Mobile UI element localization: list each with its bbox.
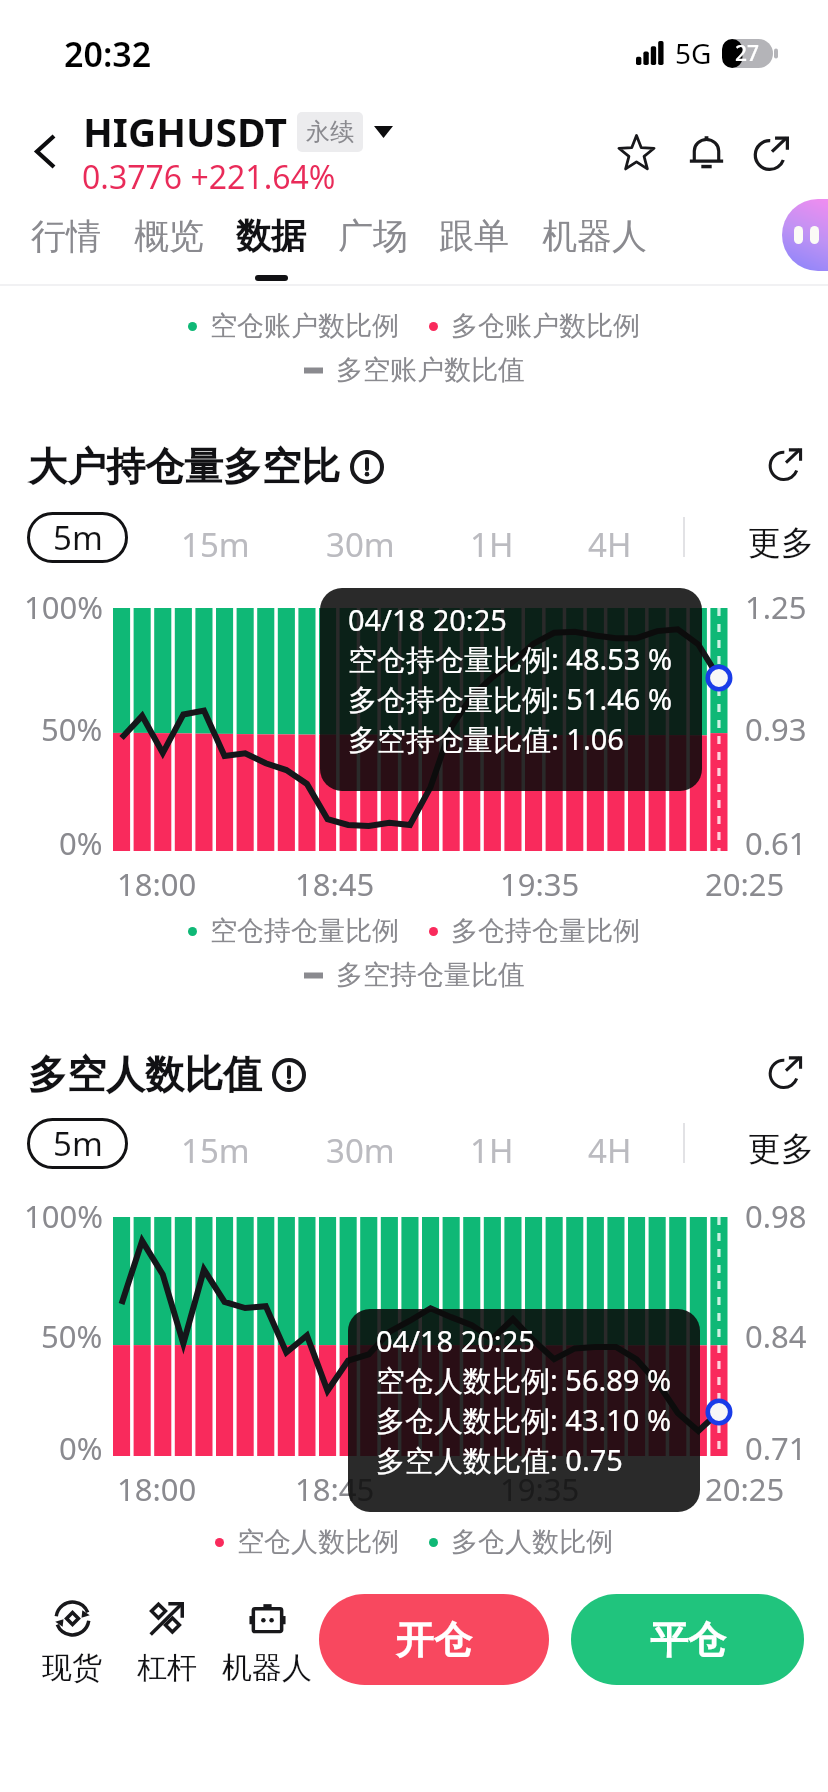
button[interactable]: 30m bbox=[326, 1128, 395, 1173]
staticText: 18:45 bbox=[295, 863, 375, 905]
button[interactable]: 平仓 bbox=[571, 1594, 804, 1685]
button[interactable]: Favorite bbox=[604, 120, 668, 184]
staticText: 0% bbox=[59, 1427, 103, 1469]
button[interactable]: Notifications bbox=[674, 120, 738, 184]
button[interactable]: 更多 bbox=[748, 1128, 814, 1170]
staticText: 1H bbox=[470, 1128, 514, 1173]
staticText: 5G bbox=[675, 34, 712, 72]
staticText: 跟单 bbox=[439, 214, 509, 258]
staticText: 20:25 bbox=[705, 1468, 785, 1510]
staticText: 100% bbox=[24, 586, 103, 628]
staticText: 30m bbox=[326, 522, 395, 567]
button[interactable]: Open full chart bbox=[754, 431, 818, 495]
button[interactable]: 开仓 bbox=[319, 1594, 549, 1685]
button[interactable]: 4H bbox=[588, 522, 632, 567]
staticText: 50% bbox=[41, 1315, 103, 1357]
staticText: 多空人数比值 bbox=[28, 1050, 262, 1099]
staticText: 18:00 bbox=[117, 863, 197, 905]
staticText: 30m bbox=[326, 1128, 395, 1173]
staticText: 平仓 bbox=[650, 1616, 726, 1664]
staticText: 更多 bbox=[748, 522, 814, 564]
staticText: 空仓持仓量比例 bbox=[210, 914, 399, 948]
button[interactable]: 数据 bbox=[227, 214, 315, 284]
staticText: 4H bbox=[588, 1128, 632, 1173]
button[interactable]: Back bbox=[15, 121, 76, 182]
button[interactable]: Open full chart bbox=[754, 1039, 818, 1103]
staticText: 开仓 bbox=[396, 1616, 472, 1664]
staticText: 现货 bbox=[42, 1649, 102, 1684]
button[interactable]: 5m bbox=[27, 512, 128, 563]
button[interactable]: 30m bbox=[326, 522, 395, 567]
staticText: 0.71 bbox=[745, 1427, 807, 1469]
staticText: 机器人 bbox=[222, 1649, 312, 1684]
button[interactable]: 4H bbox=[588, 1128, 632, 1173]
staticText: 数据 bbox=[236, 214, 306, 258]
staticText: 27 bbox=[735, 39, 760, 68]
staticText: 多空账户数比值 bbox=[336, 353, 525, 387]
staticText: 19:35 bbox=[500, 1468, 580, 1510]
button[interactable]: Customer service chat bbox=[782, 199, 828, 271]
button[interactable]: 机器人 bbox=[536, 214, 652, 284]
staticText: 杠杆 bbox=[137, 1649, 197, 1684]
staticText: 19:35 bbox=[500, 863, 580, 905]
staticText: 多仓人数比例 bbox=[451, 1525, 613, 1559]
button[interactable]: 15m bbox=[181, 522, 250, 567]
staticText: 50% bbox=[41, 708, 103, 750]
staticText: 04/18 20:25 bbox=[348, 600, 507, 639]
staticText: 更多 bbox=[748, 1128, 814, 1170]
button[interactable]: 跟单 bbox=[430, 214, 518, 284]
staticText: 多空人数比值: 0.75 bbox=[376, 1440, 623, 1480]
staticText: 0.61 bbox=[745, 822, 807, 864]
staticText: 5m bbox=[53, 1121, 103, 1166]
staticText: 04/18 20:25 bbox=[376, 1321, 535, 1360]
staticText: 0.93 bbox=[745, 708, 807, 750]
staticText: 18:45 bbox=[295, 1468, 375, 1510]
button[interactable]: 概览 bbox=[125, 214, 213, 284]
staticText: 4H bbox=[588, 522, 632, 567]
staticText: 多仓持仓量比例 bbox=[451, 914, 640, 948]
staticText: 0% bbox=[59, 822, 103, 864]
staticText: 100% bbox=[24, 1195, 103, 1237]
staticText: 空仓持仓量比例: 48.53 % bbox=[348, 639, 673, 679]
staticText: 0.98 bbox=[745, 1195, 807, 1237]
staticText: 1.25 bbox=[745, 586, 807, 628]
staticText: 1H bbox=[470, 522, 514, 567]
button[interactable]: 现货 bbox=[17, 1598, 127, 1684]
button[interactable]: 行情 bbox=[22, 214, 110, 284]
staticText: 行情 bbox=[31, 214, 101, 258]
staticText: 多仓账户数比例 bbox=[451, 309, 640, 343]
staticText: 20:25 bbox=[705, 863, 785, 905]
staticText: 20:32 bbox=[64, 31, 152, 77]
staticText: HIGHUSDT bbox=[83, 105, 287, 158]
button[interactable]: 1H bbox=[470, 522, 514, 567]
staticText: 多仓持仓量比例: 51.46 % bbox=[348, 679, 673, 719]
button[interactable]: 广场 bbox=[329, 214, 417, 284]
staticText: 15m bbox=[181, 1128, 250, 1173]
staticText: 空仓账户数比例 bbox=[210, 309, 399, 343]
button[interactable]: 5m bbox=[27, 1118, 128, 1169]
button[interactable]: 杠杆 bbox=[112, 1598, 222, 1684]
staticText: 18:00 bbox=[117, 1468, 197, 1510]
staticText: 0.3776 +221.64% bbox=[82, 155, 336, 199]
staticText: 多空持仓量比值: 1.06 bbox=[348, 719, 624, 759]
staticText: 多仓人数比例: 43.10 % bbox=[376, 1400, 672, 1440]
button[interactable]: Share bbox=[740, 120, 804, 184]
staticText: 广场 bbox=[338, 214, 408, 258]
staticText: 空仓人数比例: 56.89 % bbox=[376, 1360, 672, 1400]
staticText: 15m bbox=[181, 522, 250, 567]
staticText: 概览 bbox=[134, 214, 204, 258]
staticText: 5m bbox=[53, 515, 103, 560]
staticText: 多空持仓量比值 bbox=[336, 958, 525, 992]
button[interactable]: 1H bbox=[470, 1128, 514, 1173]
button[interactable]: 15m bbox=[181, 1128, 250, 1173]
button[interactable]: 更多 bbox=[748, 522, 814, 564]
staticText: 机器人 bbox=[542, 214, 647, 258]
staticText: 永续 bbox=[306, 117, 354, 147]
staticText: 0.84 bbox=[745, 1315, 807, 1357]
staticText: 大户持仓量多空比 bbox=[28, 442, 340, 491]
staticText: 空仓人数比例 bbox=[237, 1525, 399, 1559]
button[interactable]: 机器人 bbox=[212, 1598, 322, 1684]
